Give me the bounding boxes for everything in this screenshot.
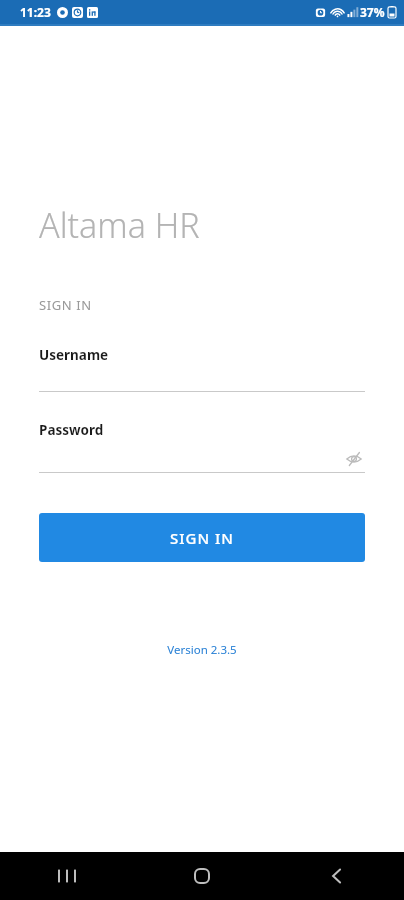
staticText: SIGN IN (39, 296, 92, 314)
staticText: 11:23 (20, 4, 51, 20)
button[interactable]: SIGN IN (39, 513, 365, 562)
staticText: Altama HR (39, 202, 200, 248)
button[interactable]: Home (134, 852, 269, 900)
button[interactable]: Show password (343, 448, 365, 470)
button[interactable]: Back (269, 852, 404, 900)
staticText: 37% (360, 4, 385, 20)
staticText: Password (39, 421, 104, 439)
button[interactable]: Recent apps (0, 852, 134, 900)
staticText: Version 2.3.5 (167, 642, 237, 658)
button[interactable]: Version 2.3.5 (167, 642, 237, 658)
staticText: Username (39, 346, 109, 364)
button[interactable]: Username (0, 346, 404, 392)
button[interactable]: Password (0, 421, 404, 473)
staticText: SIGN IN (170, 528, 234, 548)
